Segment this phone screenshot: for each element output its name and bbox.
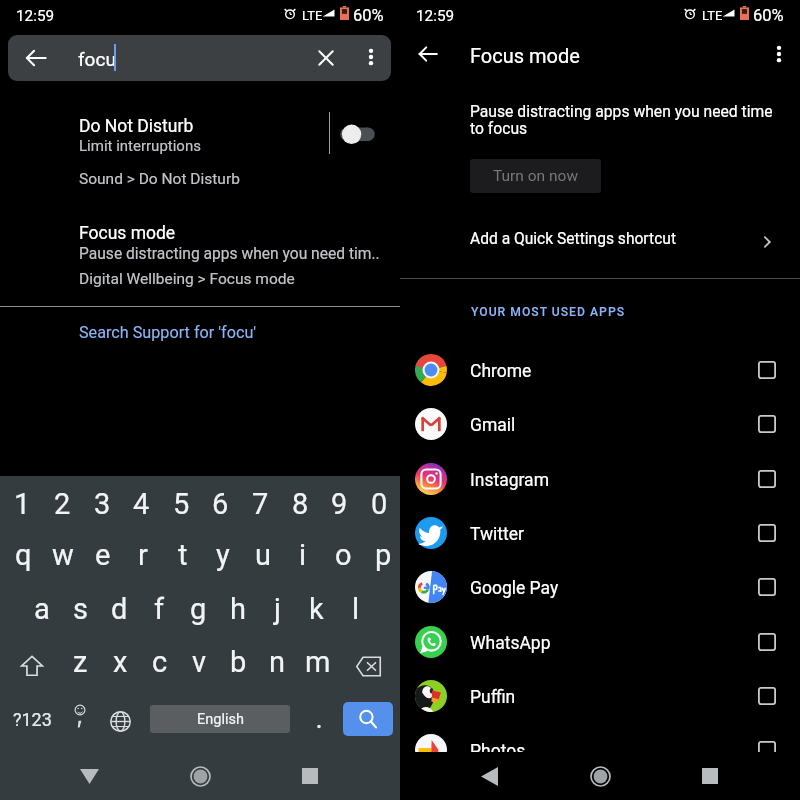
button[interactable]: n <box>258 640 297 684</box>
staticText: 60% <box>753 6 784 25</box>
button[interactable]: b <box>219 640 258 684</box>
button[interactable]: Recent apps <box>692 758 728 794</box>
button[interactable]: l <box>336 587 375 631</box>
button[interactable]: a <box>22 587 61 631</box>
button[interactable]: e <box>83 533 123 577</box>
staticText: y <box>216 538 230 572</box>
staticText: Turn on now <box>493 167 579 185</box>
button[interactable]: z <box>61 640 100 684</box>
button[interactable]: 4 <box>121 482 161 526</box>
button[interactable]: Select Puffin <box>750 679 784 713</box>
staticText: ?123 <box>13 709 52 730</box>
button[interactable]: x <box>101 640 140 684</box>
button[interactable]: Photos <box>400 723 800 777</box>
button[interactable]: Select Twitter <box>750 516 784 550</box>
button[interactable]: Do Not Disturb toggle <box>338 118 378 151</box>
staticText: i <box>299 538 307 572</box>
button[interactable]: Select Gmail <box>750 407 784 441</box>
button[interactable]: Clear search <box>314 46 338 70</box>
button[interactable]: Puffin <box>400 669 800 723</box>
button[interactable]: t <box>163 533 203 577</box>
button[interactable]: y <box>203 533 243 577</box>
staticText: Pause distracting apps when you need tim… <box>470 102 778 138</box>
button[interactable]: Search <box>343 702 393 736</box>
button[interactable]: Google Pay <box>400 560 800 614</box>
button[interactable]: Emoji <box>60 697 100 741</box>
button[interactable]: Home <box>182 758 218 794</box>
button[interactable]: m <box>298 640 337 684</box>
button[interactable]: Change keyboard language <box>100 699 140 743</box>
button[interactable]: s <box>61 587 100 631</box>
staticText: WhatsApp <box>470 633 551 654</box>
button[interactable]: More options <box>360 46 382 68</box>
button[interactable]: Select Instagram <box>750 462 784 496</box>
button[interactable]: Instagram <box>400 452 800 506</box>
button[interactable]: 6 <box>200 482 240 526</box>
button[interactable]: f <box>140 587 179 631</box>
button[interactable]: Home <box>582 758 618 794</box>
button[interactable]: i <box>283 533 323 577</box>
button[interactable]: 3 <box>82 482 122 526</box>
button[interactable]: o <box>323 533 363 577</box>
button[interactable]: Back <box>24 46 48 70</box>
button[interactable]: Back <box>470 758 508 794</box>
button[interactable]: 7 <box>240 482 280 526</box>
staticText: Do Not Disturb <box>79 116 194 137</box>
button[interactable]: ?123 <box>6 697 58 741</box>
button[interactable]: Gmail <box>400 397 800 451</box>
button[interactable]: 2 <box>42 482 82 526</box>
button[interactable]: More options <box>768 43 790 65</box>
button[interactable]: g <box>179 587 218 631</box>
button[interactable]: Add a Quick Settings shortcut <box>400 220 800 264</box>
staticText: Gmail <box>470 415 516 436</box>
button[interactable]: 8 <box>280 482 320 526</box>
button[interactable]: Recent apps <box>292 758 328 794</box>
button[interactable]: 1 <box>2 482 42 526</box>
button[interactable]: Focus mode <box>0 217 400 297</box>
button[interactable]: d <box>100 587 139 631</box>
button[interactable]: 0 <box>359 482 399 526</box>
button[interactable]: v <box>180 640 219 684</box>
button[interactable]: Hide keyboard <box>70 758 108 794</box>
button[interactable]: Turn on now <box>470 159 601 193</box>
button[interactable]: p <box>363 533 403 577</box>
button[interactable]: WhatsApp <box>400 615 800 669</box>
staticText: w <box>52 538 74 572</box>
button[interactable]: Period <box>300 696 338 740</box>
button[interactable]: Search Support for 'focu' <box>0 318 400 352</box>
staticText: Puffin <box>470 687 516 708</box>
button[interactable]: 5 <box>161 482 201 526</box>
staticText: p <box>375 538 392 572</box>
button[interactable]: u <box>243 533 283 577</box>
button[interactable]: j <box>258 587 297 631</box>
button[interactable]: 9 <box>319 482 359 526</box>
staticText: l <box>352 592 360 626</box>
button[interactable]: w <box>43 533 83 577</box>
button[interactable]: Select Google Pay <box>750 570 784 604</box>
button[interactable]: Backspace <box>344 645 392 687</box>
staticText: s <box>73 592 88 626</box>
button[interactable]: c <box>140 640 179 684</box>
button[interactable]: Back <box>417 43 439 65</box>
button[interactable]: q <box>3 533 43 577</box>
button[interactable]: Twitter <box>400 506 800 560</box>
button[interactable]: Shift <box>8 645 56 687</box>
staticText: r <box>138 538 148 572</box>
staticText: j <box>274 592 281 626</box>
button[interactable]: Select Chrome <box>750 353 784 387</box>
button[interactable]: Select WhatsApp <box>750 625 784 659</box>
staticText: t <box>178 538 188 572</box>
button[interactable]: Select Photos <box>750 733 784 767</box>
staticText: 60% <box>353 6 384 25</box>
button[interactable]: r <box>123 533 163 577</box>
staticText: z <box>73 645 88 679</box>
staticText: 0 <box>371 487 388 521</box>
staticText: Pause distracting apps when you need tim… <box>79 245 394 263</box>
button[interactable]: Back <box>8 35 391 81</box>
button[interactable]: English <box>150 705 290 733</box>
button[interactable]: Chrome <box>400 343 800 397</box>
staticText: YOUR MOST USED APPS <box>471 305 626 319</box>
button[interactable]: k <box>297 587 336 631</box>
button[interactable]: Do Not Disturb <box>0 110 400 202</box>
button[interactable]: h <box>218 587 257 631</box>
